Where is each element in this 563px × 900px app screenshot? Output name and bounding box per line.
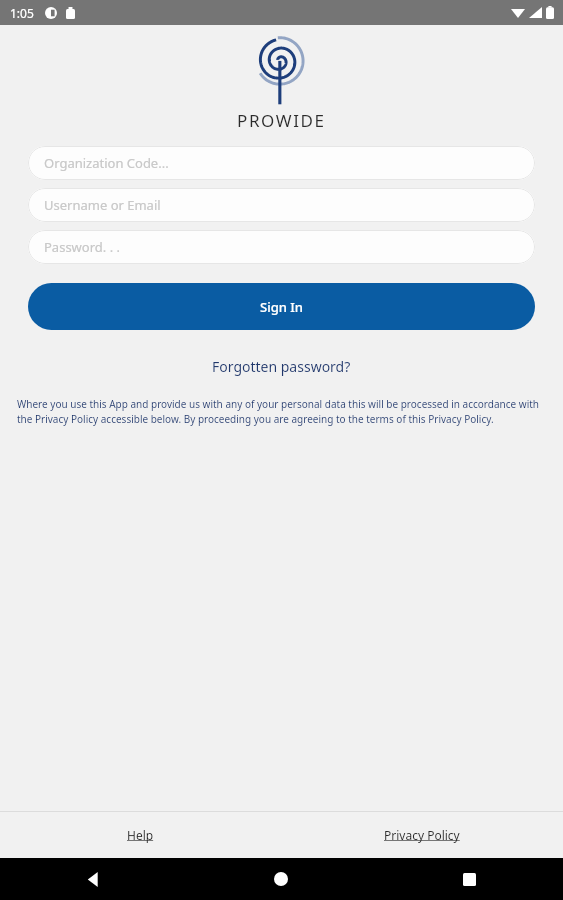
staticText: 1:05 [10,5,34,21]
staticText: Organization Code... [44,154,169,172]
button[interactable]: Forgotten password? [202,354,361,379]
staticText: PROWIDE [237,109,326,132]
button[interactable]: Organization Code... [28,146,535,180]
staticText: Privacy Policy [384,827,460,843]
button[interactable]: Sign In [28,283,535,330]
button[interactable]: Privacy Policy [372,821,472,849]
button[interactable]: Back [0,858,187,900]
button[interactable]: Username or Email [28,188,535,222]
button[interactable]: Help [115,821,166,849]
button[interactable]: Home [187,858,375,900]
staticText: Sign In [260,298,304,316]
button[interactable]: Recent apps [375,858,563,900]
staticText: Username or Email [44,196,161,214]
staticText: Password. . . [44,238,121,256]
staticText: Where you use this App and provide us wi… [17,397,546,426]
staticText: Forgotten password? [212,357,351,376]
button[interactable]: Password. . . [28,230,535,264]
staticText: Help [127,827,154,843]
